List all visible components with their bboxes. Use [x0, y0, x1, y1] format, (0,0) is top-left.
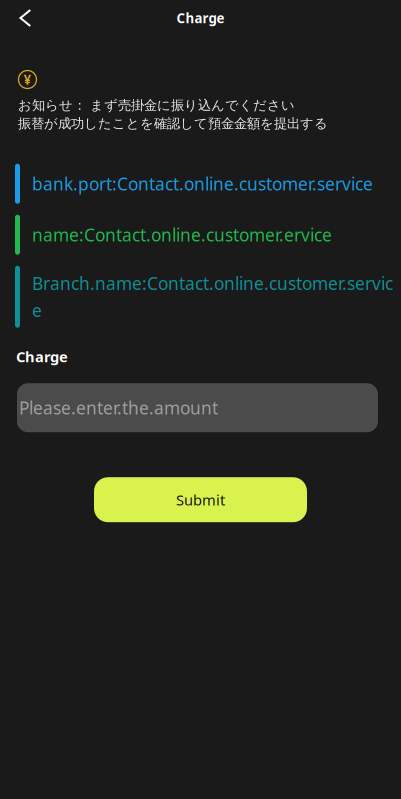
staticText: Charge: [176, 9, 224, 27]
staticText: ¥: [23, 71, 31, 88]
staticText: お知らせ： まず売掛金に振り込んでください: [18, 97, 295, 113]
staticText: Submit: [176, 490, 225, 509]
staticText: Please.enter.the.amount: [19, 396, 218, 419]
staticText: Charge: [16, 347, 68, 366]
staticText: Branch.name:Contact.online.customer.serv…: [32, 272, 393, 295]
staticText: 振替が成功したことを確認して預金金額を提出する: [18, 115, 328, 132]
staticText: e: [32, 299, 42, 322]
staticText: bank.port:Contact.online.customer.servic…: [32, 172, 373, 195]
button[interactable]: Submit: [94, 477, 307, 522]
button[interactable]: Back: [0, 0, 51, 36]
staticText: name:Contact.online.customer.ervice: [32, 223, 332, 246]
